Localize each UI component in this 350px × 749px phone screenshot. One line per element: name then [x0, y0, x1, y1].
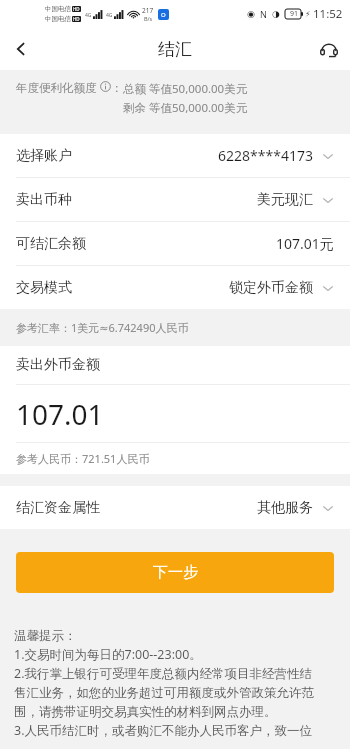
staticText: 选择账户: [16, 147, 72, 165]
staticText: 4G: [85, 12, 92, 19]
staticText: 温馨提示：: [14, 628, 77, 644]
staticText: 91: [290, 9, 299, 19]
staticText: 参考人民币：721.51人民币: [16, 451, 150, 466]
button[interactable]: 卖出币种: [0, 178, 350, 221]
staticText: HD: [73, 16, 80, 22]
staticText: 参考汇率：1美元≈6.742490人民币: [16, 320, 189, 335]
staticText: 中国电信: [45, 15, 71, 23]
button[interactable]: Customer service: [308, 28, 350, 70]
staticText: 卖出外币金额: [16, 356, 100, 374]
button[interactable]: 选择账户: [0, 134, 350, 177]
staticText: 其他服务: [257, 499, 313, 517]
staticText: HD: [73, 6, 80, 12]
staticText: ⚡: [305, 10, 311, 19]
staticText: O: [161, 11, 166, 19]
staticText: 围，请携带证明交易真实性的材料到网点办理。: [14, 704, 277, 720]
staticText: ：: [111, 81, 123, 95]
staticText: ◑: [272, 9, 280, 19]
staticText: 3.人民币结汇时，或者购汇不能办人民币客户，致一位: [14, 722, 313, 739]
button[interactable]: 交易模式: [0, 266, 350, 309]
staticText: 11:52: [313, 6, 343, 22]
button[interactable]: 可结汇余额: [0, 222, 350, 265]
staticText: 锁定外币金额: [229, 279, 313, 297]
staticText: N: [260, 8, 267, 20]
staticText: 4G: [106, 12, 113, 19]
staticText: 年度便利化额度: [16, 81, 97, 95]
staticText: 107.01: [16, 395, 104, 433]
staticText: 交易模式: [16, 279, 72, 297]
staticText: 可结汇余额: [16, 235, 86, 253]
staticText: 结汇: [158, 39, 192, 60]
staticText: 卖出币种: [16, 191, 72, 209]
staticText: 6228****4173: [218, 146, 313, 165]
staticText: 总额 等值50,000.00美元: [123, 81, 248, 97]
staticText: 217: [142, 6, 154, 15]
button[interactable]: 下一步: [16, 552, 334, 593]
staticText: 美元现汇: [257, 191, 313, 209]
button[interactable]: Back: [0, 28, 42, 70]
staticText: B/s: [144, 15, 153, 22]
button[interactable]: 结汇资金属性: [0, 486, 350, 529]
staticText: 下一步: [153, 563, 198, 582]
staticText: ◉: [247, 9, 255, 19]
staticText: 中国电信: [45, 5, 71, 13]
staticText: 2.我行掌上银行可受理年度总额内经常项目非经营性结: [14, 665, 313, 682]
staticText: 结汇资金属性: [16, 499, 100, 517]
staticText: 107.01元: [276, 234, 334, 253]
staticText: 售汇业务，如您的业务超过可用额度或外管政策允许范: [14, 685, 314, 701]
staticText: 1.交易时间为每日的7:00--23:00。: [14, 646, 202, 663]
staticText: 剩余 等值50,000.00美元: [123, 100, 248, 116]
